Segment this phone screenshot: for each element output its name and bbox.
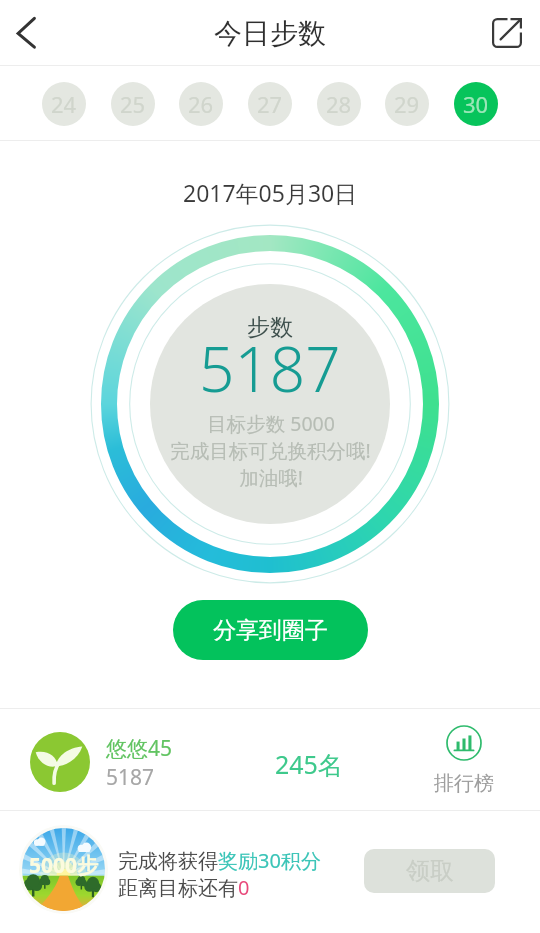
staticText: 29: [394, 89, 420, 119]
staticText: 完成目标可兑换积分哦!: [170, 437, 371, 464]
button[interactable]: 26: [179, 82, 223, 126]
button[interactable]: 30: [454, 82, 498, 126]
button[interactable]: Back: [0, 0, 60, 66]
staticText: 今日步数: [214, 16, 326, 51]
staticText: 领取: [406, 856, 454, 886]
staticText: 加油哦!: [239, 464, 303, 491]
staticText: 5187: [106, 763, 155, 792]
staticText: 2017年05月30日: [183, 177, 358, 208]
button[interactable]: 28: [317, 82, 361, 126]
staticText: 目标步数 5000: [207, 410, 335, 437]
button[interactable]: 排行榜: [427, 725, 500, 796]
staticText: 5000步: [29, 851, 99, 880]
staticText: 26: [188, 89, 214, 119]
button[interactable]: 分享到圈子: [173, 600, 368, 660]
staticText: 25: [120, 89, 146, 119]
staticText: 5187: [199, 326, 341, 410]
staticText: 分享到圈子: [213, 616, 328, 645]
button[interactable]: Share: [474, 0, 540, 66]
staticText: 24: [51, 89, 77, 119]
button[interactable]: 25: [111, 82, 155, 126]
staticText: 排行榜: [434, 771, 494, 796]
staticText: 245名: [275, 747, 343, 781]
staticText: 距离目标还有0: [118, 874, 250, 901]
button[interactable]: 27: [248, 82, 292, 126]
staticText: 27: [257, 89, 283, 119]
staticText: 悠悠45: [106, 734, 173, 763]
staticText: 30: [463, 89, 489, 119]
staticText: 步数: [247, 313, 293, 342]
staticText: 28: [326, 89, 352, 119]
button[interactable]: 领取: [364, 849, 495, 893]
button[interactable]: Avatar: [30, 732, 90, 792]
button[interactable]: 29: [385, 82, 429, 126]
staticText: 完成将获得奖励30积分: [118, 847, 321, 874]
button[interactable]: 24: [42, 82, 86, 126]
